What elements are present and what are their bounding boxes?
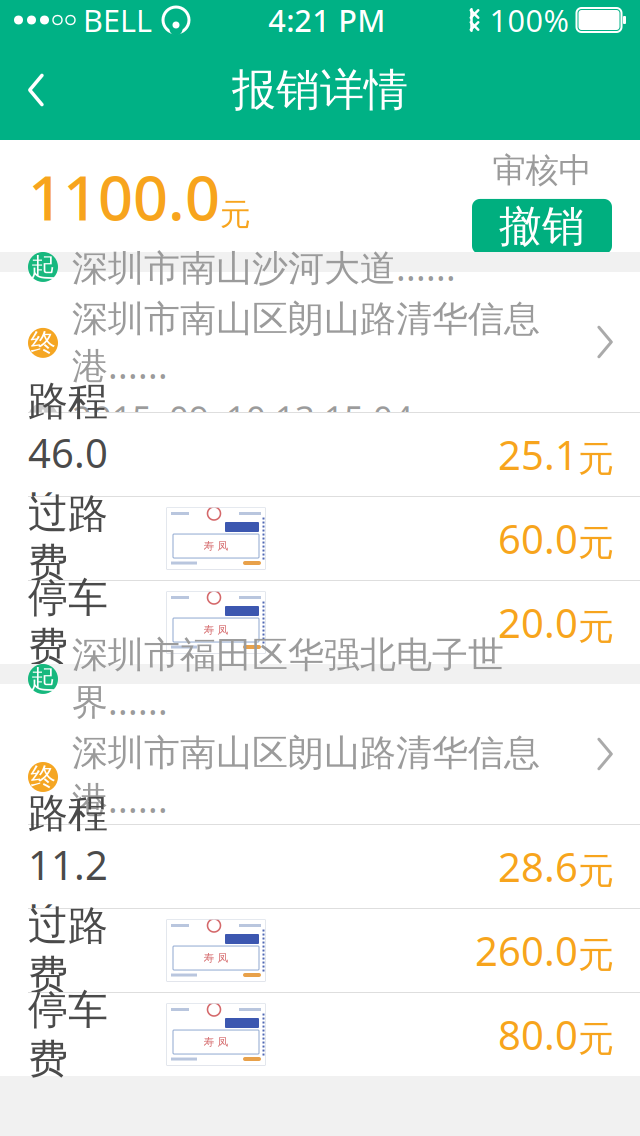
staticText: 路程46.0Km (28, 377, 108, 532)
staticText: 25.1 (498, 428, 578, 481)
staticText: 元 (578, 437, 614, 481)
staticText: 寿 凤 (203, 623, 228, 636)
staticText: 20.0 (498, 596, 578, 649)
staticText: 停车费 (28, 573, 108, 672)
staticText: 100% (489, 0, 568, 40)
staticText: 2015–07–10 17:08:32 (72, 829, 413, 875)
staticText: 终 (30, 327, 55, 358)
button[interactable]: 停车费 (0, 992, 640, 1076)
staticText: 80.0 (498, 1008, 578, 1061)
staticText: 元 (578, 849, 614, 893)
button[interactable]: Back (0, 56, 72, 124)
staticText: 寿 凤 (203, 1035, 228, 1048)
staticText: BELL (83, 0, 152, 40)
staticText: 深圳市福田区华强北电子世界...... (72, 633, 504, 725)
button[interactable]: 起 (0, 684, 640, 824)
staticText: 寿 凤 (203, 539, 228, 552)
staticText: 起 (30, 663, 55, 694)
staticText: 深圳市南山区朗山路清华信息港...... (72, 297, 540, 389)
button[interactable]: 过路费 (0, 496, 640, 580)
staticText: 审核中 (492, 150, 591, 191)
staticText: 停车费 (28, 985, 108, 1084)
staticText: 元 (578, 605, 614, 649)
button[interactable]: 起 (0, 272, 640, 412)
staticText: 28.6 (498, 840, 578, 893)
staticText: 寿 凤 (203, 951, 228, 964)
staticText: 深圳市南山区朗山路清华信息港...... (72, 731, 540, 823)
staticText: 报销详情 (232, 63, 408, 117)
button[interactable]: 撤销 (472, 199, 612, 254)
staticText: 撤销 (499, 200, 585, 253)
staticText: 行程数: 3 (258, 268, 401, 314)
staticText: 260.0 (475, 924, 578, 977)
staticText: 1100.0 (28, 156, 220, 237)
button[interactable]: 停车费 (0, 580, 640, 664)
staticText: 元 (220, 196, 251, 233)
staticText: 2015–07–10 14:08:15 (28, 245, 222, 337)
button[interactable]: 路程11.2Km (0, 824, 640, 908)
staticText: 终 (30, 761, 55, 792)
staticText: 2015–09–10 13:15:04 (72, 395, 413, 441)
staticText: 起 (30, 251, 55, 282)
staticText: 过路费 (28, 489, 108, 588)
staticText: 60.0 (498, 512, 578, 565)
staticText: 过路费 (28, 901, 108, 1000)
staticText: 元 (578, 1017, 614, 1061)
staticText: 路程11.2Km (28, 789, 108, 944)
staticText: 元 (578, 521, 614, 565)
staticText: 深圳市南山沙河大道...... (72, 243, 456, 291)
button[interactable]: 过路费 (0, 908, 640, 992)
button[interactable]: 路程46.0Km (0, 412, 640, 496)
staticText: 4:21 PM (268, 0, 385, 40)
staticText: 元 (578, 933, 614, 977)
